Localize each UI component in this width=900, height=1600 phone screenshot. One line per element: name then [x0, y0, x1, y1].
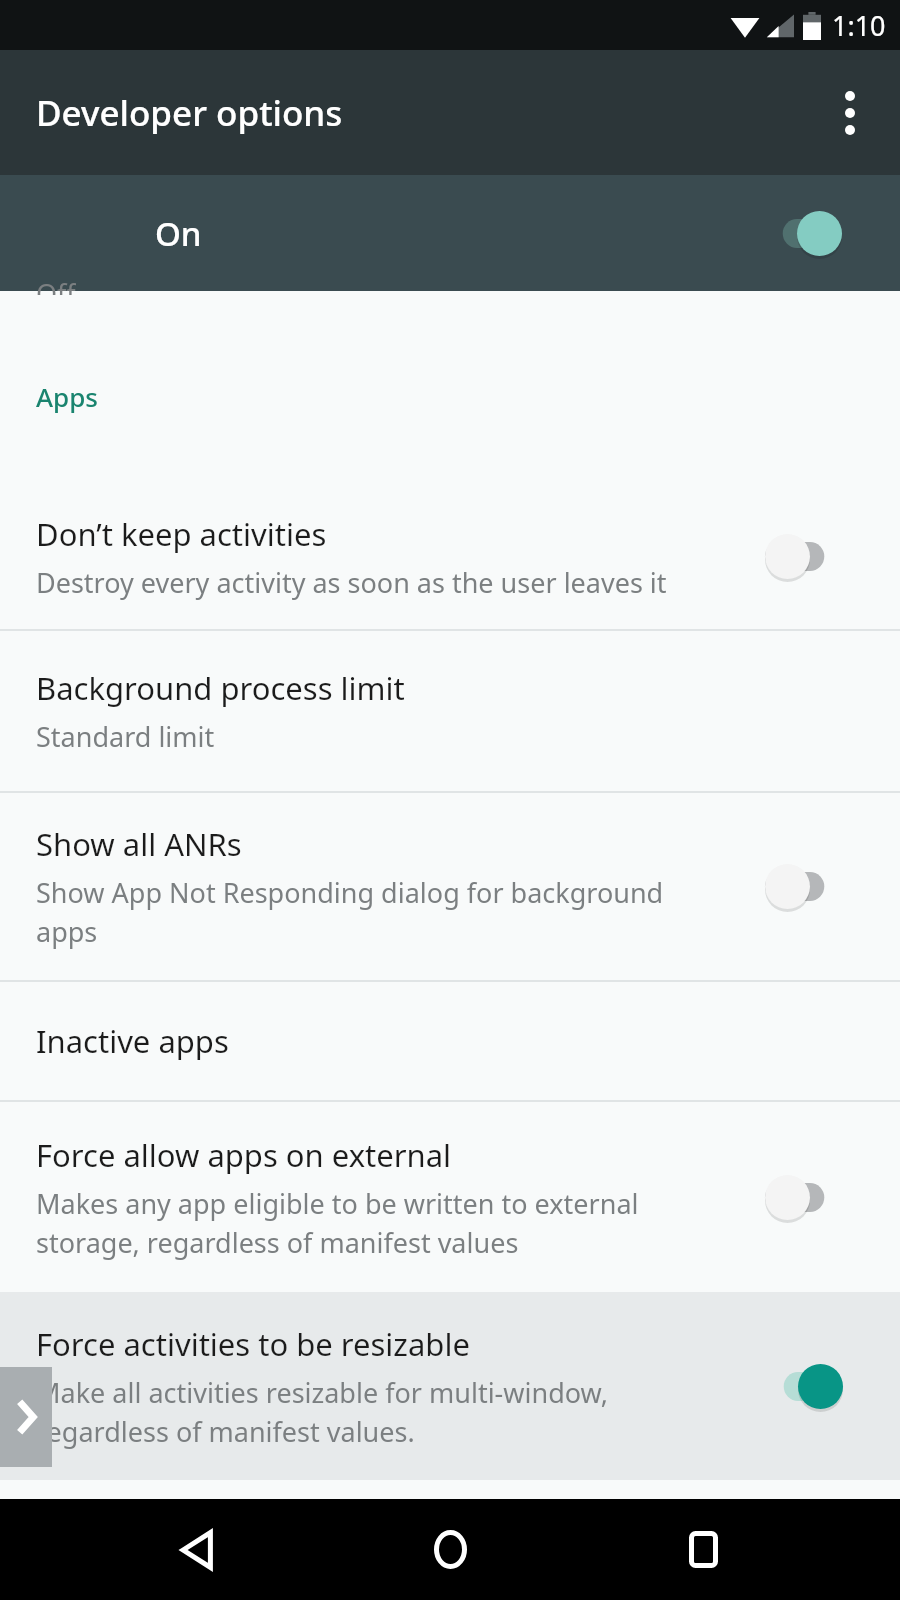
- staticText: Force activities to be resizable: [36, 1323, 470, 1365]
- staticText: Don’t keep activities: [36, 513, 327, 555]
- button[interactable]: Force allow apps on external: [0, 1102, 900, 1292]
- staticText: Off: [36, 275, 76, 295]
- staticText: Standard limit: [36, 718, 215, 755]
- staticText: 1:10: [832, 7, 886, 44]
- button[interactable]: Background process limit: [0, 631, 900, 791]
- button[interactable]: Don’t keep activities: [0, 484, 900, 629]
- staticText: Inactive apps: [36, 1020, 229, 1062]
- staticText: Developer options: [36, 89, 343, 137]
- staticText: Show App Not Responding dialog for backg…: [36, 874, 664, 950]
- button[interactable]: Open navigation drawer: [0, 1367, 52, 1467]
- staticText: Show all ANRs: [36, 823, 242, 865]
- staticText: Make all activities resizable for multi-…: [36, 1374, 608, 1450]
- staticText: Destroy every activity as soon as the us…: [36, 564, 667, 601]
- button[interactable]: More options: [812, 75, 888, 151]
- button[interactable]: Back: [143, 1499, 253, 1600]
- button[interactable]: Recent apps: [648, 1499, 758, 1600]
- button[interactable]: On: [0, 175, 900, 291]
- staticText: On: [155, 211, 202, 256]
- button[interactable]: Force activities to be resizable: [0, 1292, 900, 1480]
- button[interactable]: Inactive apps: [0, 982, 900, 1100]
- staticText: Makes any app eligible to be written to …: [36, 1185, 639, 1261]
- button[interactable]: Home: [395, 1499, 505, 1600]
- staticText: Force allow apps on external: [36, 1134, 452, 1176]
- staticText: Apps: [36, 379, 98, 414]
- button[interactable]: Show all ANRs: [0, 793, 900, 980]
- staticText: Background process limit: [36, 667, 405, 709]
